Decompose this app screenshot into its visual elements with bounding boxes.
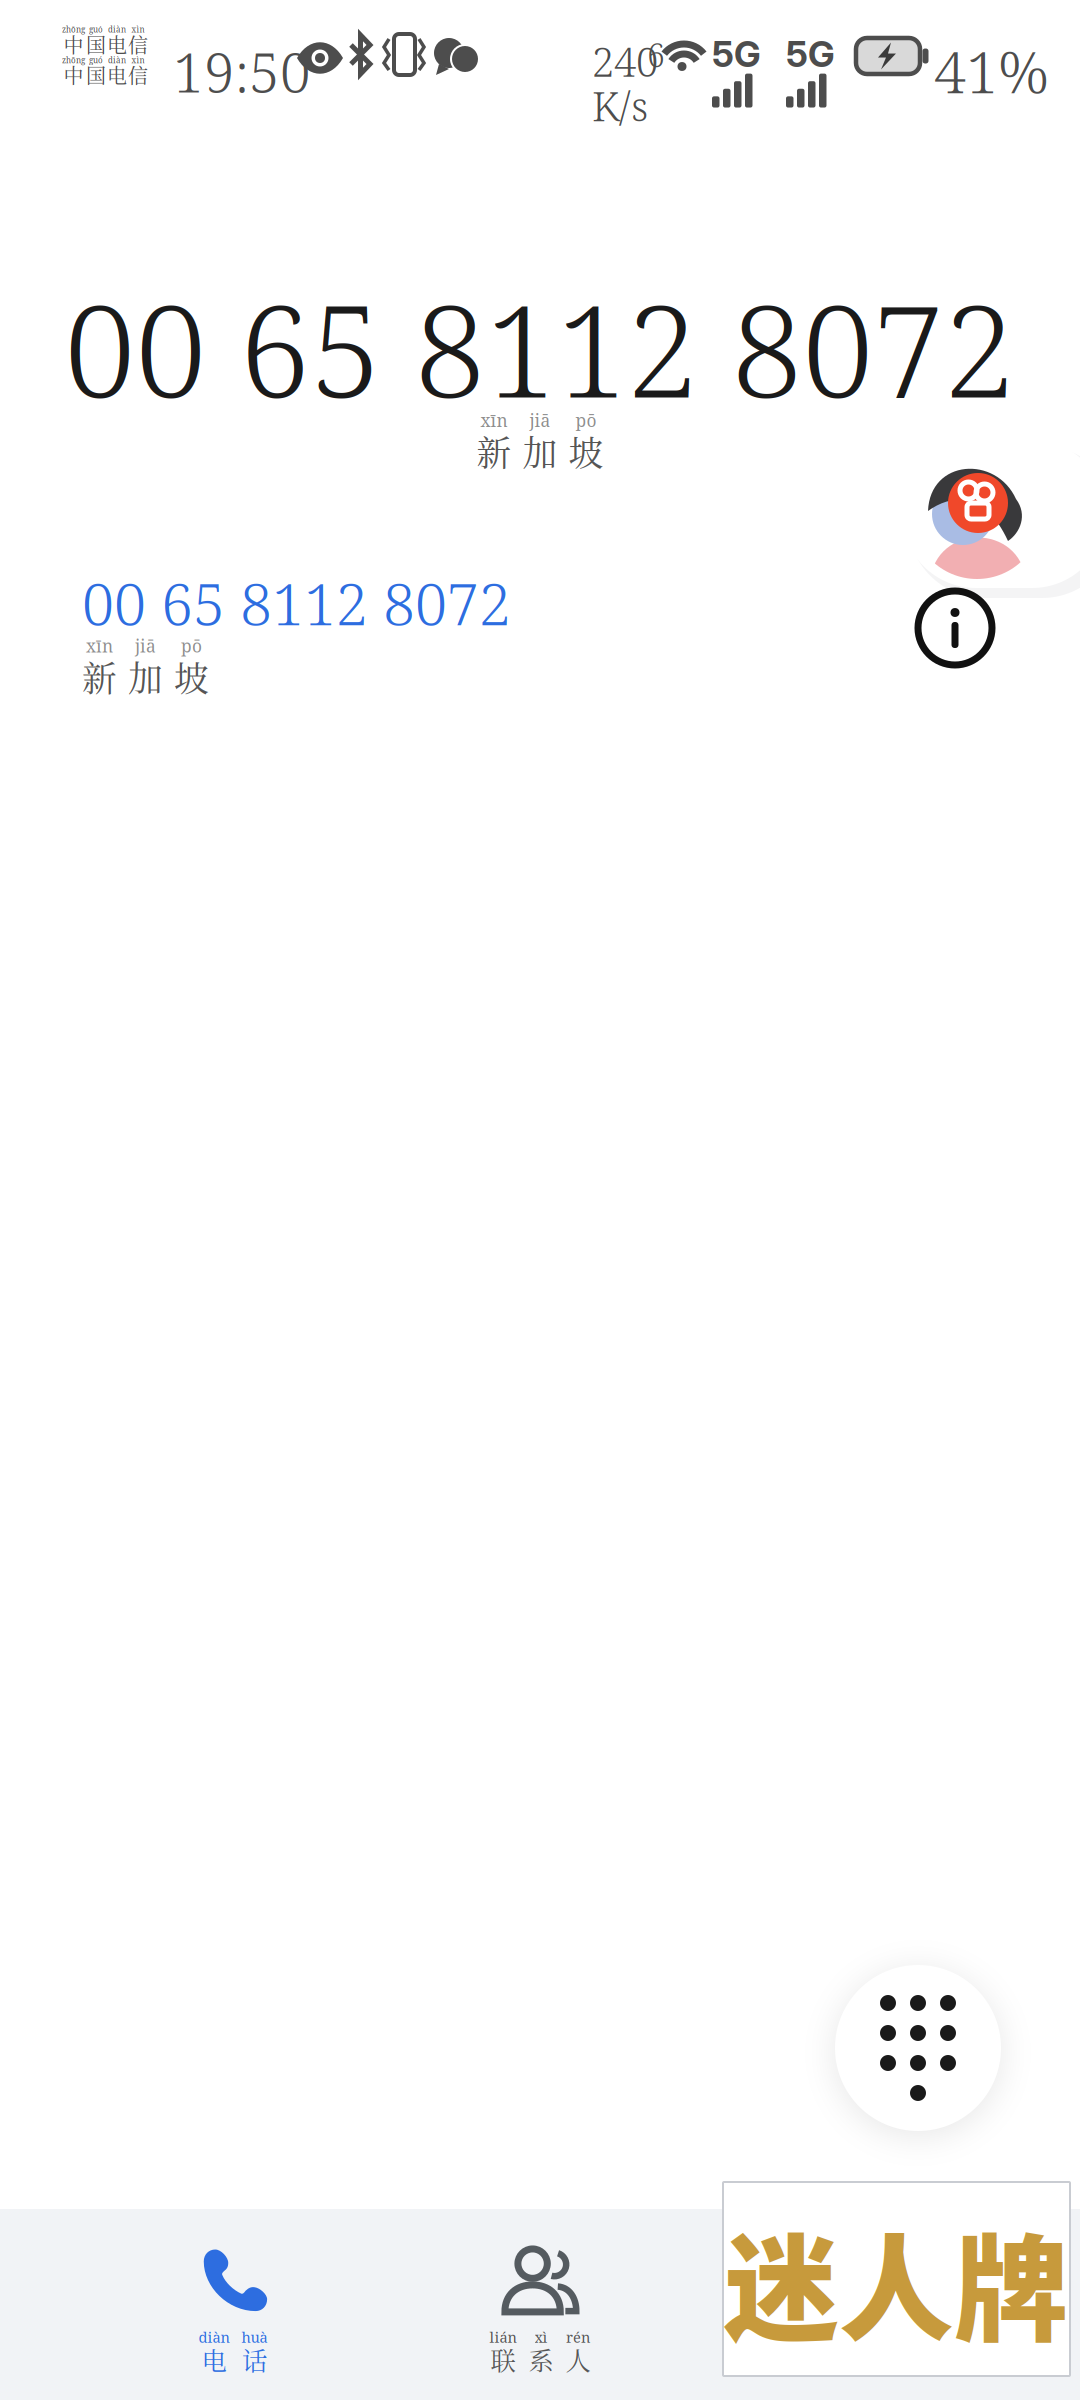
staticText: 电: [107, 30, 127, 59]
staticText: xìn: [131, 55, 144, 65]
button[interactable]: diàn: [68, 2209, 398, 2400]
staticText: 国: [86, 60, 106, 89]
staticText: zhōng: [62, 55, 85, 65]
staticText: 信: [128, 60, 148, 89]
staticText: diàn: [108, 55, 126, 65]
staticText: 00 65 8112 8072: [82, 564, 511, 642]
staticText: huà: [241, 2327, 267, 2347]
staticText: diàn: [108, 24, 126, 35]
staticText: diàn: [198, 2327, 229, 2347]
button[interactable]: Show keypad: [828, 1958, 1008, 2138]
staticText: zhōng: [62, 24, 85, 35]
staticText: pō: [575, 408, 596, 432]
button[interactable]: Kuaishou floating shortcut: [902, 440, 1080, 600]
staticText: 信: [128, 30, 148, 59]
staticText: rén: [566, 2327, 590, 2347]
staticText: xì: [534, 2327, 547, 2347]
staticText: 迷人牌: [724, 2198, 1069, 2364]
staticText: 加: [522, 426, 557, 476]
staticText: 坡: [174, 652, 209, 701]
staticText: 加: [128, 652, 163, 701]
staticText: jiā: [135, 634, 156, 658]
staticText: 240: [592, 34, 658, 88]
staticText: guó: [89, 24, 103, 35]
staticText: xīn: [480, 408, 507, 432]
staticText: 5G: [712, 32, 761, 76]
button[interactable]: Number info: [905, 578, 1005, 678]
staticText: K/s: [592, 78, 648, 133]
staticText: jiā: [529, 408, 550, 432]
staticText: guó: [89, 55, 103, 65]
staticText: 41%: [934, 32, 1049, 110]
staticText: 新: [476, 426, 511, 476]
staticText: 系: [528, 2341, 553, 2377]
staticText: 电: [201, 2341, 226, 2377]
staticText: 19:50: [173, 34, 311, 108]
staticText: lián: [489, 2327, 516, 2347]
staticText: 话: [242, 2341, 267, 2377]
staticText: pō: [181, 634, 202, 658]
button[interactable]: Advertisement: [723, 2182, 1070, 2376]
button[interactable]: 00 65 8112 8072: [0, 550, 880, 723]
staticText: 国: [86, 30, 106, 59]
staticText: xìn: [131, 24, 144, 35]
staticText: 电: [107, 60, 127, 89]
staticText: 联: [490, 2341, 515, 2377]
staticText: 中: [63, 60, 83, 89]
staticText: xīn: [86, 634, 113, 658]
staticText: 00 65 8112 8072: [64, 262, 1015, 434]
staticText: 坡: [568, 426, 603, 476]
staticText: 人: [565, 2341, 590, 2377]
staticText: 中: [63, 30, 83, 59]
button[interactable]: lián: [375, 2209, 705, 2400]
staticText: 5G: [786, 32, 835, 76]
staticText: 新: [82, 652, 117, 701]
staticText: 6: [647, 33, 665, 77]
